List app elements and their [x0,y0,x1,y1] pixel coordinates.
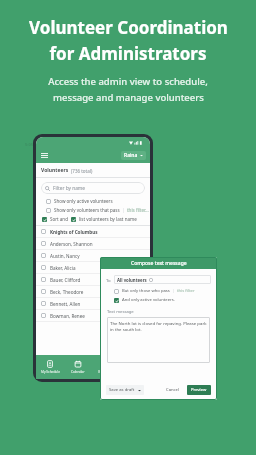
staticText: | [122,207,125,213]
staticText: Show only active volunteers [54,198,113,204]
staticText: To [106,277,111,283]
staticText: But only those who pass [122,288,170,294]
staticText: Raina [124,152,138,159]
button[interactable]: Raina [121,151,146,160]
staticText: The North lot is closed for repaving. Pl… [110,320,207,332]
staticText: Volunteers [41,167,69,174]
staticText: And only active volunteers. [122,297,175,303]
button[interactable]: Volunteers [92,355,121,379]
staticText: Knights of Columbus [50,229,98,235]
staticText: Text message [107,309,134,315]
staticText: Access the admin view to schedule, [48,75,208,88]
staticText: My Schedule [41,370,60,374]
staticText: Save as draft [109,387,135,393]
button[interactable]: The North lot is closed for repaving. Pl… [107,317,210,363]
button[interactable]: Bennett, Allen [36,298,150,309]
staticText: Filter by name [53,185,86,192]
button[interactable]: And only active volunteers. [114,297,217,303]
button[interactable]: Bauer, Clifford [36,274,150,285]
staticText: message and manage volunteers [53,91,204,104]
staticText: Show only volunteers that pass [54,207,120,213]
button[interactable]: Preview [187,385,211,395]
button[interactable]: Sort and [42,216,150,222]
staticText: Preview [191,387,207,393]
button[interactable]: Anderson, Shannon [36,238,150,249]
button[interactable]: Baker, Alicia [36,262,150,273]
staticText: | [172,288,175,294]
staticText: Austin, Nancy [50,253,80,259]
button[interactable]: Show only volunteers that pass [46,207,150,213]
staticText: (736 total) [71,168,93,174]
button[interactable]: Show only active volunteers [46,198,150,204]
button[interactable]: Beck, Theodore [36,286,150,297]
button[interactable]: My Schedule [36,355,64,379]
staticText: Cancel [166,387,180,393]
staticText: All volunteers [117,277,147,283]
button[interactable]: Knights of Columbus [36,226,150,237]
button[interactable]: Bowman, Renee [36,310,150,321]
button[interactable]: Calendar [64,355,92,379]
staticText: Baker, Alicia [50,265,76,271]
staticText: Bennett, Allen [50,301,81,307]
staticText: Bowman, Renee [50,313,85,319]
staticText: this filter [177,288,195,294]
staticText: Calendar [71,370,85,374]
button[interactable]: Menu [40,151,49,160]
button[interactable]: Save as draft [106,385,144,395]
staticText: Sort and [50,216,68,222]
button[interactable]: Austin, Nancy [36,250,150,261]
staticText: 5:05 [25,142,33,147]
staticText: for Administrators [49,42,207,65]
staticText: Bauer, Clifford [50,277,81,283]
button[interactable]: All volunteers [114,275,211,284]
staticText: this filter... [127,207,149,213]
button[interactable]: Filter by name [41,182,145,194]
staticText: Anderson, Shannon [50,241,93,247]
staticText: Volunteer Coordination [29,16,228,39]
button[interactable]: Cancel [163,385,183,395]
staticText: Compose text message [131,260,187,267]
staticText: list volunteers by last name [79,216,137,222]
button[interactable]: But only those who pass [114,288,217,294]
staticText: Beck, Theodore [50,289,84,295]
staticText: Volunteers [98,370,115,374]
